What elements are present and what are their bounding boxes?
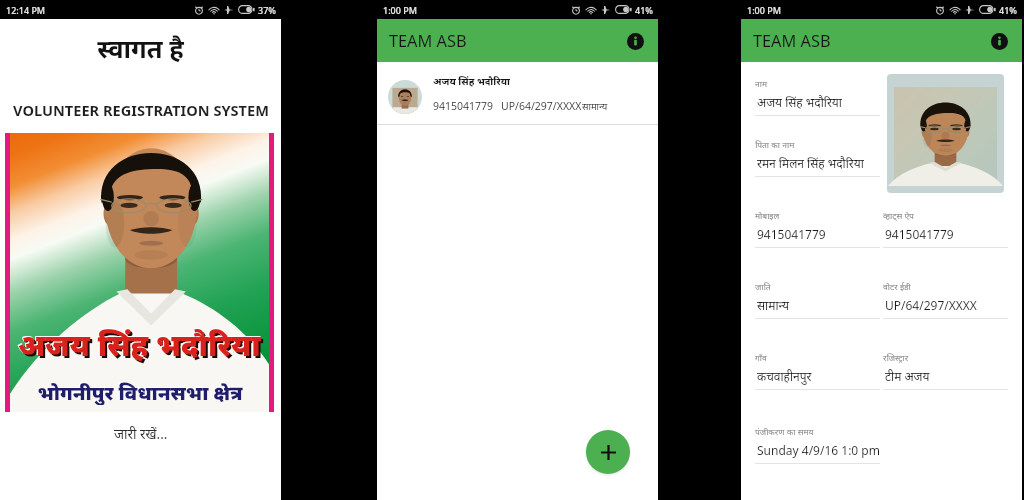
- staticText: 9415041779: [757, 226, 826, 242]
- staticText: 37%: [258, 4, 276, 16]
- button[interactable]: Add volunteer: [586, 430, 630, 474]
- staticText: UP/64/297/XXXX: [501, 99, 582, 113]
- staticText: कचवाहीनपुर: [757, 368, 812, 384]
- staticText: 1:00 PM: [383, 4, 417, 16]
- staticText: व्हाट्स ऐप: [883, 210, 914, 222]
- staticText: अजय सिंह भदौरिया: [757, 94, 842, 110]
- staticText: TEAM ASB: [753, 30, 831, 52]
- staticText: मोबाइल: [755, 210, 780, 222]
- staticText: पिता का नाम: [755, 139, 795, 151]
- staticText: TEAM ASB: [389, 30, 467, 52]
- staticText: नाम: [755, 78, 768, 90]
- staticText: स्वागत है: [97, 31, 184, 66]
- staticText: अजय सिंह भदौरिया: [20, 326, 263, 367]
- staticText: अजय सिंह भदौरिया: [18, 324, 261, 365]
- staticText: 9415041779: [885, 226, 954, 242]
- staticText: भोगनीपुर विधानसभा क्षेत्र: [37, 379, 243, 405]
- staticText: भोगनीपुर विधानसभा क्षेत्र: [36, 378, 242, 404]
- button[interactable]: अजय सिंह भदौरिया: [377, 62, 658, 124]
- staticText: रमन मिलन सिंह भदौरिया: [757, 155, 864, 171]
- staticText: 41%: [999, 4, 1017, 16]
- staticText: जारी रखें...: [114, 425, 168, 443]
- staticText: VOLUNTEER REGISTRATION SYSTEM: [13, 100, 269, 120]
- staticText: 9415041779: [433, 99, 494, 113]
- button[interactable]: Info: [623, 29, 647, 53]
- staticText: 1:00 PM: [747, 4, 781, 16]
- staticText: टीम अजय: [885, 368, 930, 384]
- staticText: UP/64/297/XXXX: [885, 297, 977, 313]
- staticText: अजय सिंह भदौरिया: [433, 74, 510, 88]
- staticText: पंजीकरण का समय: [755, 426, 814, 438]
- button[interactable]: Info: [987, 29, 1011, 53]
- staticText: अजय सिंह भदौरिया: [17, 323, 260, 364]
- staticText: Sunday 4/9/16 1:0 pm: [757, 442, 880, 458]
- staticText: गाँव: [755, 352, 767, 364]
- staticText: जाति: [755, 281, 771, 293]
- staticText: सामान्य: [757, 297, 790, 313]
- staticText: सामान्य: [582, 100, 608, 113]
- staticText: 12:14 PM: [6, 4, 46, 16]
- staticText: वोटर ईडी: [883, 281, 911, 293]
- staticText: रजिस्ट्रार: [883, 352, 909, 364]
- staticText: 41%: [635, 4, 653, 16]
